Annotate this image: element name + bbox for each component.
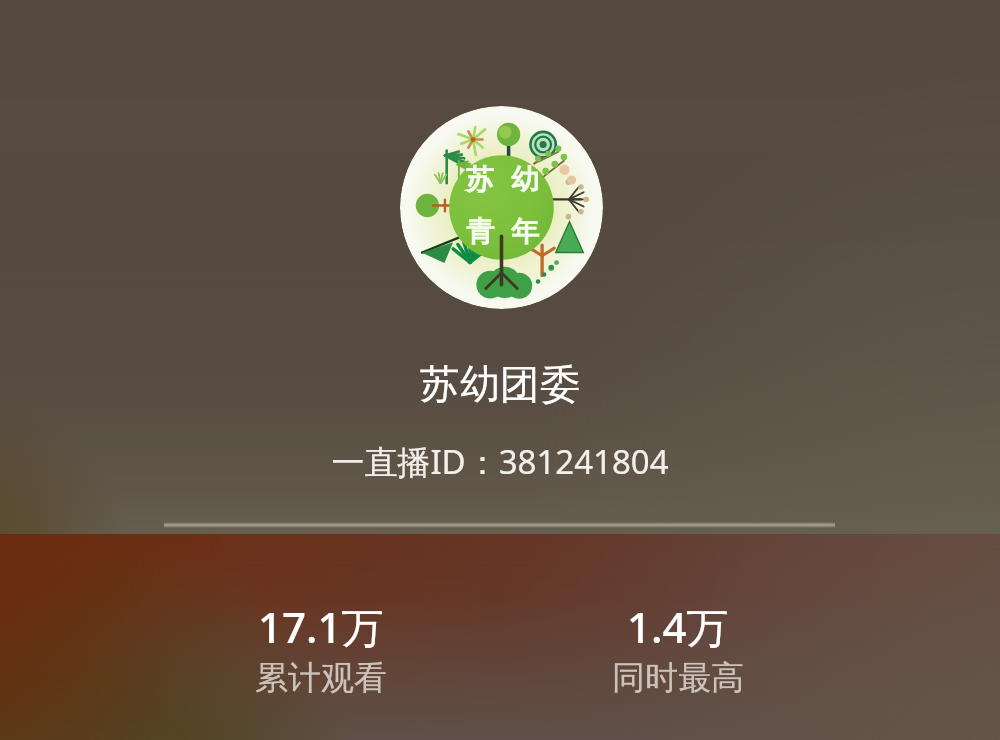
button[interactable]: 1.4万 [612,598,744,699]
staticText: 1.4万 [627,598,729,655]
staticText: 同时最高 [612,657,744,699]
staticText: 青 [466,214,494,249]
staticText: 17.1万 [258,598,384,655]
button[interactable]: Profile avatar [400,106,603,309]
staticText: 幼 [511,162,539,197]
staticText: 苏 [466,162,494,197]
staticText: 累计观看 [255,657,387,699]
staticText: 苏幼团委 [420,359,580,409]
button[interactable]: 17.1万 [255,598,387,699]
staticText: 一直播ID：381241804 [331,439,669,484]
staticText: 年 [511,214,539,249]
